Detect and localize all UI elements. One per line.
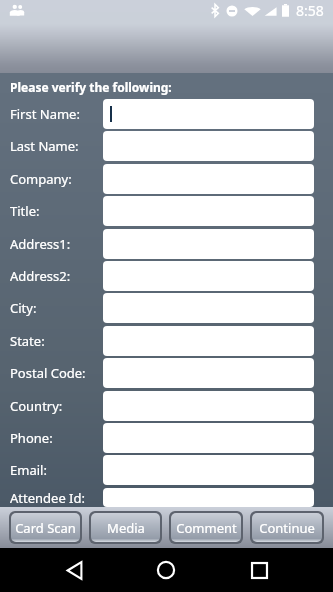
button[interactable] — [103, 358, 314, 388]
staticText: Address1: — [10, 235, 103, 253]
button[interactable] — [103, 488, 314, 507]
button[interactable] — [103, 293, 314, 323]
staticText: Country: — [10, 397, 103, 415]
staticText: Attendee Id: — [10, 489, 103, 507]
button[interactable] — [103, 391, 314, 421]
staticText: Comment — [176, 519, 237, 537]
staticText: Phone: — [10, 429, 103, 447]
button[interactable] — [103, 455, 314, 485]
button[interactable] — [103, 131, 314, 161]
button[interactable]: Media — [91, 513, 160, 542]
staticText: Media — [107, 519, 145, 537]
button[interactable]: Continue — [252, 513, 322, 542]
staticText: City: — [10, 299, 103, 317]
button[interactable] — [103, 229, 314, 259]
staticText: Email: — [10, 461, 103, 479]
button[interactable] — [103, 99, 314, 129]
staticText: Card Scan — [15, 519, 76, 537]
button[interactable]: Home — [142, 548, 190, 592]
staticText: Continue — [259, 519, 315, 537]
button[interactable] — [103, 164, 314, 194]
button[interactable]: Comment — [171, 513, 241, 542]
staticText: 8:58 — [296, 1, 324, 20]
button[interactable] — [103, 423, 314, 453]
staticText: State: — [10, 332, 103, 350]
staticText: Title: — [10, 202, 103, 220]
staticText: Postal Code: — [10, 364, 103, 382]
staticText: Company: — [10, 170, 103, 188]
button[interactable] — [103, 326, 314, 356]
button[interactable]: Recent apps — [235, 548, 283, 592]
staticText: Address2: — [10, 267, 103, 285]
staticText: Last Name: — [10, 137, 103, 155]
button[interactable] — [103, 261, 314, 291]
button[interactable]: Back — [50, 548, 98, 592]
button[interactable] — [103, 196, 314, 226]
staticText: Please verify the following: — [10, 79, 172, 95]
staticText: First Name: — [10, 105, 103, 123]
button[interactable]: Card Scan — [11, 513, 80, 542]
